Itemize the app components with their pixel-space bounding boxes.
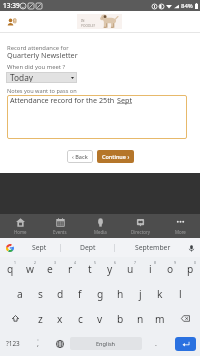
staticText: s (38, 287, 43, 301)
button[interactable]: s (30, 281, 50, 306)
button[interactable]: Shift (0, 306, 30, 331)
staticText: u (127, 262, 134, 276)
button[interactable]: Backspace (170, 306, 200, 331)
button[interactable]: h (110, 281, 130, 306)
staticText: Dept (80, 243, 96, 252)
staticText: x (57, 312, 63, 326)
staticText: m (155, 312, 165, 326)
button[interactable]: v (90, 306, 110, 331)
staticText: Notes you want to pass on (7, 87, 77, 95)
staticText: Home (14, 229, 27, 235)
staticText: Continue › (102, 153, 130, 160)
button[interactable]: Continue › (97, 150, 134, 163)
button[interactable]: 2 (20, 257, 40, 281)
button[interactable]: Attendance record for the 25th (7, 95, 187, 139)
staticText: Quarterly Newsletter (7, 50, 78, 60)
button[interactable]: j (130, 281, 150, 306)
button[interactable]: m (150, 306, 170, 331)
staticText: ‹ Back (72, 153, 88, 160)
button[interactable]: f (70, 281, 90, 306)
button[interactable]: Events (40, 214, 80, 238)
staticText: o (167, 262, 174, 276)
staticText: n (137, 312, 144, 326)
button[interactable]: 3 (40, 257, 60, 281)
button[interactable]: n (130, 306, 150, 331)
button[interactable]: Dept (61, 238, 114, 257)
staticText: q (7, 262, 14, 276)
button[interactable]: d (50, 281, 70, 306)
button[interactable]: More (160, 214, 200, 238)
button[interactable]: g (90, 281, 110, 306)
button[interactable]: 9 (160, 257, 180, 281)
button[interactable]: Members (5, 16, 17, 28)
staticText: v (97, 312, 103, 326)
staticText: Media (94, 229, 107, 235)
staticText: Sept (117, 95, 133, 105)
button[interactable]: ?123 (0, 331, 26, 356)
staticText: z (38, 312, 43, 326)
button[interactable]: z (30, 306, 50, 331)
staticText: g (97, 287, 104, 301)
staticText: h (117, 287, 124, 301)
staticText: w (26, 262, 35, 276)
staticText: 3 (54, 260, 56, 265)
staticText: e (47, 262, 53, 276)
staticText: p (187, 262, 194, 276)
staticText: When did you meet ? (7, 63, 66, 71)
button[interactable]: Directory (120, 214, 160, 238)
staticText: l (179, 287, 182, 301)
staticText: i (149, 262, 152, 276)
staticText: 7 (134, 260, 136, 265)
staticText: d (57, 287, 64, 301)
button[interactable]: 1 (0, 257, 20, 281)
button[interactable]: a (10, 281, 30, 306)
button[interactable]: September (115, 238, 190, 257)
button[interactable]: 6 (100, 257, 120, 281)
button[interactable]: 7 (120, 257, 140, 281)
button[interactable]: Enter (175, 337, 196, 351)
button[interactable]: Voice input (186, 243, 196, 253)
staticText: Attendance record for the 25th (10, 95, 117, 105)
staticText: 13:39 (3, 1, 20, 10)
staticText: 9 (174, 260, 176, 265)
button[interactable]: Media (80, 214, 120, 238)
button[interactable]: c (70, 306, 90, 331)
button[interactable]: 5 (80, 257, 100, 281)
button[interactable]: Sept (19, 238, 60, 257)
staticText: k (157, 287, 163, 301)
staticText: POODLE? (81, 24, 96, 28)
staticText: Record attendance for (7, 44, 69, 52)
staticText: 2 (34, 260, 36, 265)
button[interactable]: Today (6, 72, 77, 83)
staticText: . (155, 339, 157, 349)
staticText: English (96, 340, 116, 348)
button[interactable]: k (150, 281, 170, 306)
staticText: Directory (131, 229, 150, 235)
button[interactable]: 8 (140, 257, 160, 281)
button[interactable]: x (50, 306, 70, 331)
staticText: Sept (32, 243, 47, 252)
button[interactable]: Google (5, 243, 15, 253)
button[interactable]: English (70, 337, 142, 350)
staticText: 84% (181, 2, 193, 10)
button[interactable]: Home (0, 214, 40, 238)
staticText: 0 (194, 260, 196, 265)
staticText: 4 (74, 260, 76, 265)
staticText: 6 (114, 260, 116, 265)
button[interactable]: 4 (60, 257, 80, 281)
staticText: j (139, 287, 142, 301)
staticText: t (88, 262, 92, 276)
staticText: , (37, 339, 39, 349)
staticText: ?123 (6, 339, 20, 348)
button[interactable]: ‹ Back (67, 150, 93, 163)
button[interactable]: b (110, 306, 130, 331)
button[interactable]: l (170, 281, 190, 306)
button[interactable]: ° (26, 331, 50, 356)
staticText: c (78, 312, 83, 326)
staticText: a (17, 287, 23, 301)
staticText: f (78, 287, 82, 301)
staticText: 5 (94, 260, 96, 265)
button[interactable]: Change language (50, 331, 70, 356)
button[interactable]: 0 (180, 257, 200, 281)
